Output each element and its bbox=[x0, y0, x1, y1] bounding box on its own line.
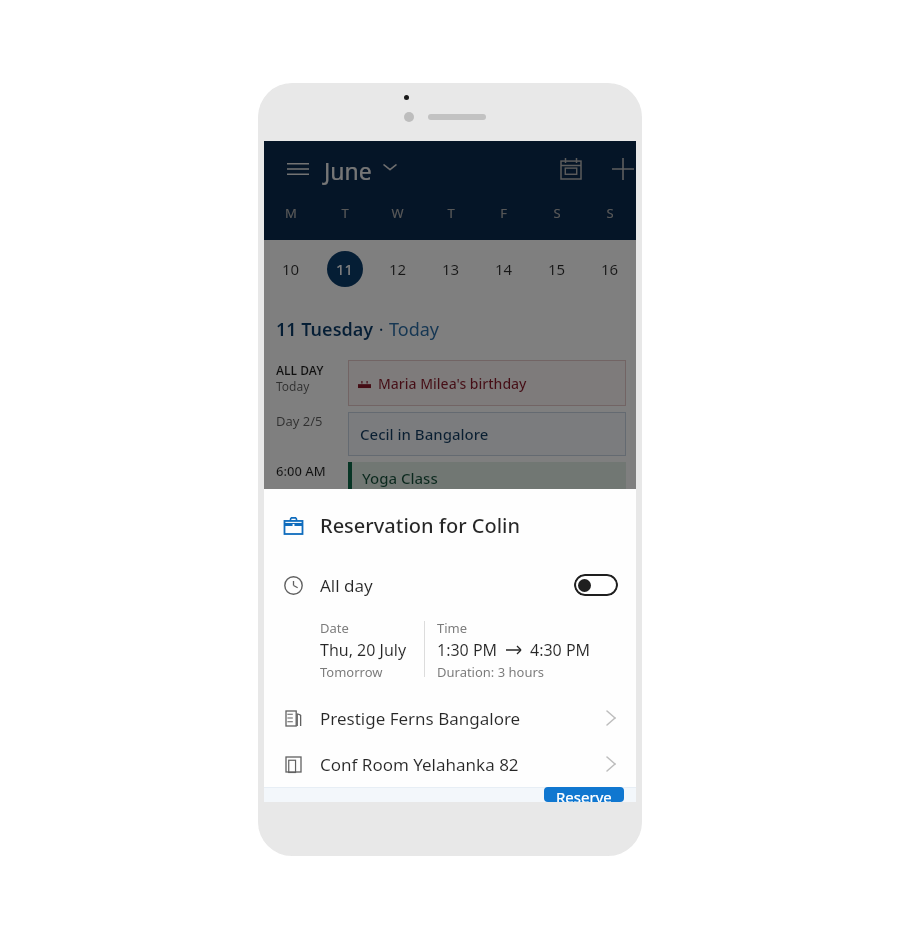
staticText: Cecil in Bangalore bbox=[360, 424, 489, 444]
button[interactable]: 11 bbox=[318, 240, 371, 297]
staticText: 16 bbox=[601, 259, 619, 279]
staticText: Today bbox=[276, 378, 310, 394]
staticText: Date bbox=[320, 619, 349, 637]
staticText: · bbox=[374, 317, 389, 342]
button[interactable]: 15 bbox=[530, 240, 583, 297]
button[interactable]: Reservation for Colin bbox=[264, 503, 636, 547]
staticText: 13 bbox=[442, 259, 460, 279]
staticText: Reserve bbox=[556, 787, 612, 802]
button[interactable]: Prestige Ferns Bangalore bbox=[264, 695, 636, 741]
staticText: Time bbox=[437, 619, 468, 637]
staticText: 15 bbox=[548, 259, 566, 279]
staticText: M bbox=[285, 204, 297, 222]
button[interactable]: 14 bbox=[477, 240, 530, 297]
button[interactable]: Conf Room Yelahanka 82 bbox=[264, 741, 636, 787]
button[interactable]: Reserve bbox=[544, 787, 624, 802]
button[interactable]: 6:00 AM bbox=[264, 462, 636, 508]
staticText: 11 Tuesday bbox=[276, 317, 374, 342]
button[interactable]: Time bbox=[437, 619, 636, 691]
button[interactable]: 13 bbox=[424, 240, 477, 297]
staticText: Duration: 3 hours bbox=[437, 663, 545, 681]
staticText: 1:30 PM bbox=[437, 639, 498, 661]
button[interactable]: New event bbox=[602, 148, 642, 190]
staticText: All day bbox=[320, 574, 373, 597]
staticText: F bbox=[500, 204, 507, 222]
button[interactable]: Today bbox=[550, 148, 592, 190]
button[interactable]: All day bbox=[264, 563, 636, 607]
staticText: 4:30 PM bbox=[530, 639, 591, 661]
button[interactable]: Day 2/5 bbox=[264, 412, 636, 456]
button[interactable]: All day toggle bbox=[574, 574, 618, 596]
button[interactable]: Change month bbox=[376, 153, 404, 181]
staticText: Thu, 20 July bbox=[320, 639, 407, 661]
staticText: Yoga Class bbox=[362, 468, 438, 488]
staticText: W bbox=[391, 204, 404, 222]
staticText: 11 bbox=[336, 259, 354, 279]
staticText: 10 bbox=[282, 259, 300, 279]
staticText: Tomorrow bbox=[320, 663, 383, 681]
button[interactable]: ALL DAY bbox=[264, 360, 636, 406]
staticText: June bbox=[324, 155, 372, 186]
staticText: S bbox=[606, 204, 614, 222]
staticText: 14 bbox=[495, 259, 513, 279]
staticText: T bbox=[447, 204, 455, 222]
staticText: S bbox=[553, 204, 561, 222]
staticText: Day 2/5 bbox=[276, 412, 323, 430]
staticText: T bbox=[341, 204, 349, 222]
button[interactable]: Menu bbox=[278, 149, 318, 189]
button[interactable]: 10 bbox=[264, 240, 318, 297]
button[interactable]: 16 bbox=[583, 240, 636, 297]
staticText: Conf Room Yelahanka 82 bbox=[320, 753, 519, 776]
staticText: Prestige Ferns Bangalore bbox=[320, 707, 521, 730]
staticText: Reservation for Colin bbox=[320, 512, 521, 539]
staticText: Today bbox=[389, 317, 439, 342]
button[interactable]: 12 bbox=[371, 240, 424, 297]
staticText: ALL DAY bbox=[276, 362, 324, 378]
staticText: 12 bbox=[389, 259, 407, 279]
staticText: 6:00 AM bbox=[276, 462, 326, 480]
button[interactable]: Date bbox=[320, 619, 424, 691]
staticText: Maria Milea's birthday bbox=[378, 374, 527, 393]
